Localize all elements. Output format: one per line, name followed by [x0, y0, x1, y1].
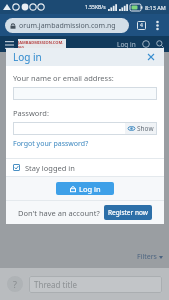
staticText: Password:: [13, 108, 49, 118]
staticText: 8:13 AM: [145, 4, 166, 11]
button[interactable]: Log in: [56, 182, 114, 195]
button[interactable]: Forgot your password?: [13, 139, 89, 149]
button[interactable]: orum.jambadmission.com.ng: [5, 18, 129, 33]
button[interactable]: Log in: [117, 40, 136, 49]
button[interactable]: Register now: [104, 205, 152, 220]
button[interactable]: More options: [151, 19, 164, 32]
button[interactable]: Menu: [5, 40, 14, 49]
staticText: JAMBADMISSION.COM.NG: [18, 40, 66, 50]
staticText: orum.jambadmission.com.ng: [19, 21, 116, 31]
staticText: Your name or email address:: [13, 73, 114, 83]
staticText: 4: [140, 22, 143, 29]
button[interactable]: Search: [156, 40, 164, 48]
button[interactable]: Show: [128, 122, 154, 135]
button[interactable]: Tabs: [135, 19, 148, 32]
staticText: Log in: [79, 184, 101, 194]
staticText: Thread title: [34, 279, 77, 290]
staticText: 1.55KB/s: [85, 4, 106, 11]
button[interactable]: Close: [145, 51, 157, 63]
button[interactable]: Filters: [137, 252, 163, 262]
button[interactable]: Stay logged in: [13, 159, 157, 176]
button[interactable]: [13, 87, 157, 100]
staticText: Don't have an account?: [18, 208, 100, 218]
staticText: Filters: [137, 252, 157, 262]
staticText: Stay logged in: [25, 163, 75, 173]
staticText: Register now: [108, 208, 148, 217]
staticText: Show: [137, 124, 154, 133]
button[interactable]: Thread title: [29, 276, 162, 293]
staticText: ?: [13, 278, 17, 290]
button[interactable]: Notifications: [142, 40, 150, 48]
staticText: Log in: [13, 50, 42, 64]
button[interactable]: [13, 122, 125, 135]
button[interactable]: Account: [7, 276, 23, 292]
